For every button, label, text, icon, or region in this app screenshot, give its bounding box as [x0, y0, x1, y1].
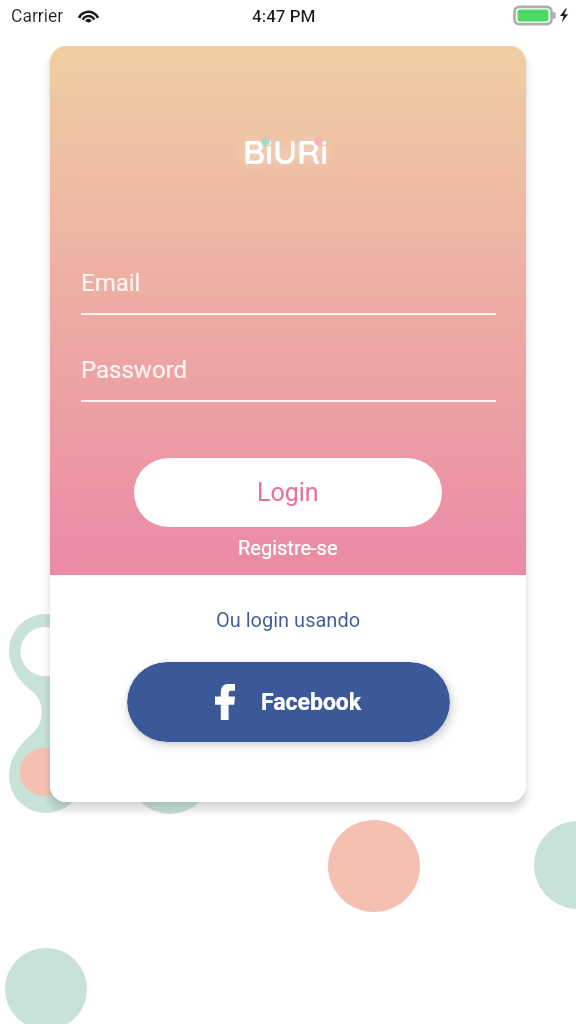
button[interactable]: Password [81, 356, 496, 402]
other: Battery charging [513, 5, 571, 27]
staticText: Password [81, 356, 188, 384]
staticText: BiURi [243, 130, 329, 173]
button[interactable]: Facebook [127, 662, 450, 742]
staticText: Ou login usando [216, 608, 361, 631]
staticText: Facebook [261, 689, 362, 716]
staticText: Carrier [11, 6, 64, 27]
staticText: Login [257, 478, 319, 507]
other: Wi-Fi [77, 8, 100, 24]
button[interactable]: Registre-se [238, 536, 338, 559]
other: Facebook [215, 684, 235, 720]
button[interactable]: Login [134, 458, 442, 527]
staticText: Registre-se [238, 536, 338, 559]
button[interactable]: Email [81, 269, 496, 315]
staticText: Email [81, 269, 141, 297]
staticText: 4:47 PM [252, 6, 316, 26]
